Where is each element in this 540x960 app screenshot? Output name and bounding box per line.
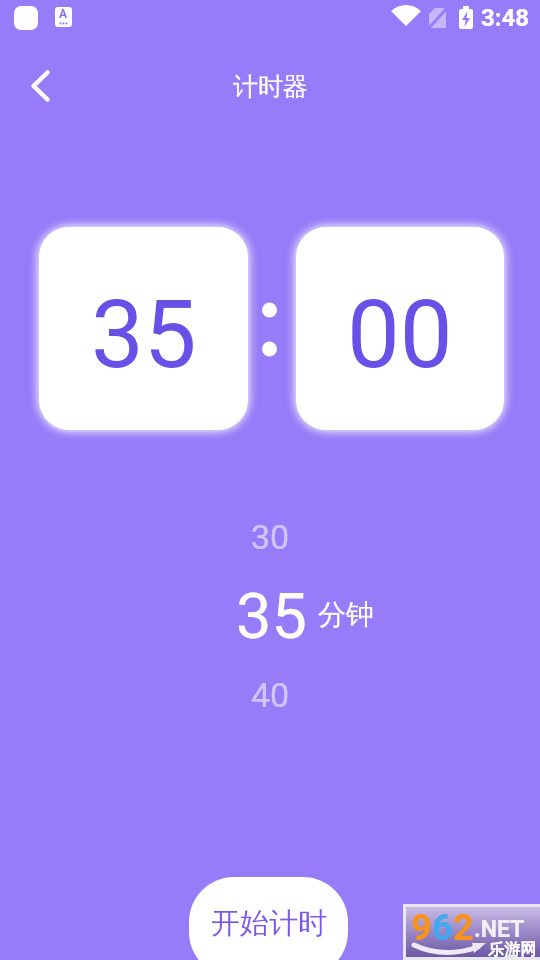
- staticText: 35: [236, 580, 307, 648]
- staticText: 35: [91, 280, 197, 390]
- button[interactable]: 35: [38, 226, 249, 431]
- staticText: 3:48: [481, 4, 530, 32]
- staticText: 分钟: [318, 597, 374, 632]
- button[interactable]: 开始计时: [189, 877, 348, 960]
- staticText: 乐游网: [488, 940, 536, 960]
- staticText: .NET: [474, 916, 525, 943]
- staticText: 6: [432, 907, 453, 949]
- button[interactable]: 00: [295, 226, 505, 431]
- staticText: 00: [347, 280, 453, 390]
- staticText: 30: [251, 517, 290, 557]
- staticText: 40: [251, 675, 290, 715]
- staticText: 开始计时: [211, 905, 327, 942]
- staticText: A: [59, 7, 68, 21]
- staticText: 计时器: [233, 71, 308, 102]
- staticText: 2: [453, 907, 474, 949]
- button[interactable]: [18, 64, 62, 108]
- staticText: 9: [411, 907, 432, 949]
